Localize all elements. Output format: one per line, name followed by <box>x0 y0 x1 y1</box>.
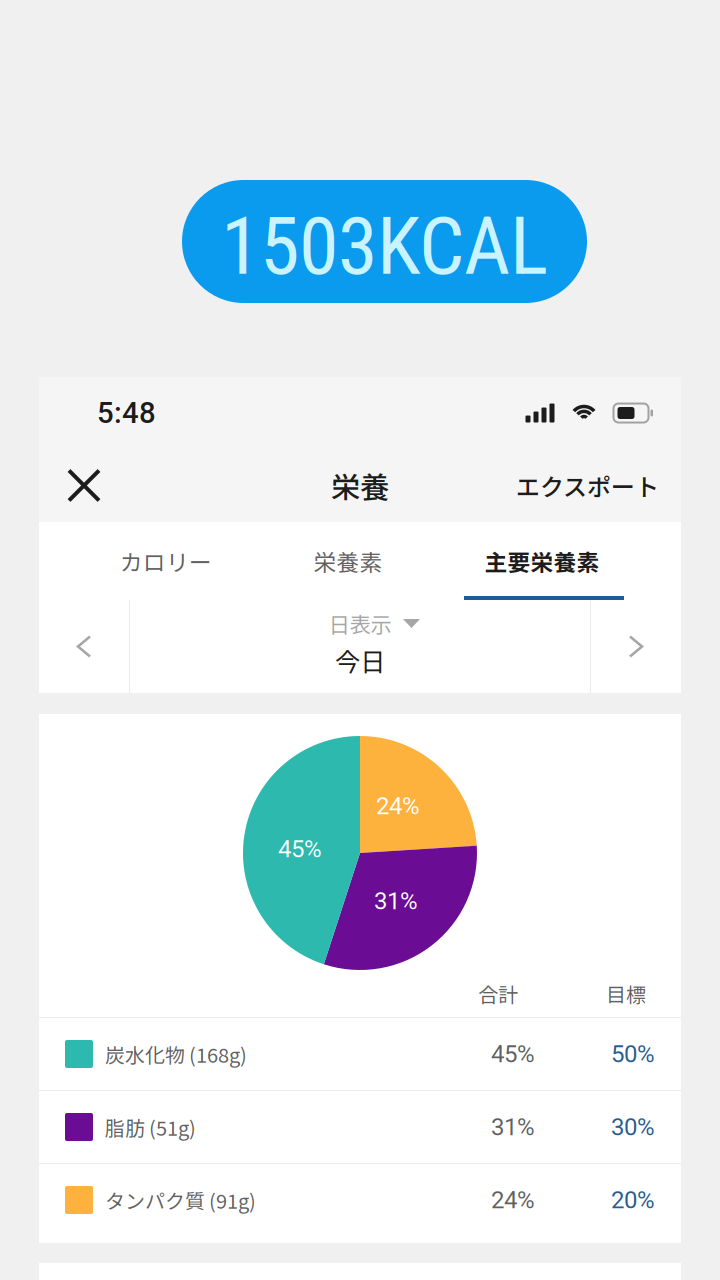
button[interactable]: エクスポート <box>494 449 681 522</box>
staticText: 20% <box>611 1186 655 1214</box>
staticText: 主要栄養素 <box>484 545 599 577</box>
staticText: 栄養素 <box>313 545 382 577</box>
button[interactable]: タンパク質 (91g) <box>39 1164 681 1236</box>
button[interactable]: Previous day <box>39 600 129 693</box>
button[interactable]: Close <box>39 449 129 522</box>
staticText: 30% <box>611 1113 655 1141</box>
staticText: 31% <box>374 887 418 915</box>
staticText: 栄養 <box>331 464 389 507</box>
staticText: 24% <box>491 1186 535 1214</box>
staticText: 目標 <box>606 979 646 1008</box>
staticText: エクスポート <box>516 468 659 503</box>
button[interactable]: 主要栄養素 <box>403 522 681 600</box>
staticText: 50% <box>611 1040 655 1068</box>
staticText: カロリー <box>120 545 212 577</box>
button[interactable]: Next day <box>591 600 681 693</box>
staticText: 脂肪 (51g) <box>105 1112 196 1141</box>
staticText: 24% <box>376 792 420 820</box>
button[interactable]: 栄養素 <box>293 522 403 600</box>
staticText: 1503KCAL <box>221 200 548 293</box>
staticText: 日表示 <box>328 608 391 639</box>
button[interactable]: 炭水化物 (168g) <box>39 1018 681 1090</box>
staticText: 炭水化物 (168g) <box>105 1039 247 1068</box>
button[interactable]: 脂肪 (51g) <box>39 1091 681 1163</box>
staticText: 5:48 <box>97 396 156 430</box>
staticText: タンパク質 (91g) <box>105 1185 256 1214</box>
staticText: 45% <box>491 1040 535 1068</box>
button[interactable]: カロリー <box>39 522 293 600</box>
staticText: 合計 <box>478 979 518 1008</box>
staticText: 今日 <box>335 642 385 679</box>
staticText: 45% <box>278 835 322 863</box>
staticText: 31% <box>491 1113 535 1141</box>
